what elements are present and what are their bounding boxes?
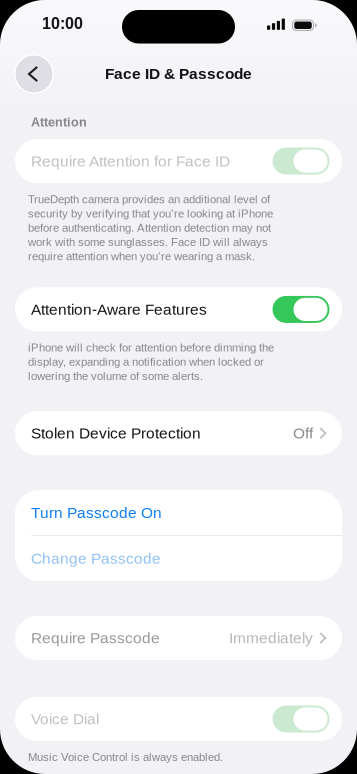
staticText: Attention-Aware Features bbox=[31, 301, 207, 318]
button[interactable]: Attention-Aware Features bbox=[15, 287, 342, 331]
staticText: Require Attention for Face ID bbox=[31, 152, 230, 170]
button[interactable]: Voice Dial bbox=[15, 697, 342, 741]
button[interactable]: Stolen Device Protection bbox=[15, 411, 342, 455]
staticText: Attention bbox=[31, 115, 87, 129]
staticText: Require Passcode bbox=[31, 629, 160, 647]
button[interactable]: Require Attention for Face ID bbox=[15, 139, 342, 183]
staticText: Off bbox=[293, 425, 313, 442]
staticText: Face ID & Passcode bbox=[105, 65, 252, 82]
button[interactable]: Turn Passcode On bbox=[15, 490, 342, 535]
staticText: Immediately bbox=[229, 629, 313, 647]
button[interactable]: Back bbox=[15, 55, 53, 93]
staticText: Change Passcode bbox=[31, 550, 161, 567]
staticText: iPhone will check for attention before d… bbox=[28, 340, 274, 383]
button[interactable]: Change Passcode bbox=[15, 536, 342, 581]
staticText: TrueDepth camera provides an additional … bbox=[28, 192, 273, 263]
button[interactable]: Require Passcode bbox=[15, 616, 342, 660]
staticText: Turn Passcode On bbox=[31, 504, 162, 521]
staticText: Voice Dial bbox=[31, 710, 99, 728]
staticText: 10:00 bbox=[42, 14, 83, 32]
staticText: Music Voice Control is always enabled. bbox=[28, 750, 223, 764]
staticText: Stolen Device Protection bbox=[31, 425, 201, 442]
